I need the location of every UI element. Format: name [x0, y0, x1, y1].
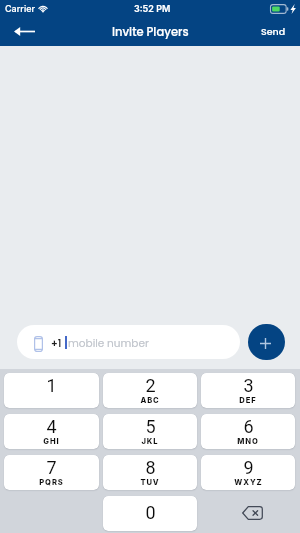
button[interactable]: 3 — [201, 373, 295, 408]
button[interactable]: +1 — [17, 325, 240, 359]
staticText: mobile number — [68, 336, 149, 351]
staticText: 4 — [46, 416, 57, 437]
staticText: 5 — [145, 416, 156, 437]
staticText: MNO — [237, 437, 259, 446]
staticText: 6 — [243, 416, 254, 437]
staticText: 1 — [46, 375, 57, 396]
staticText: 2 — [145, 375, 156, 396]
staticText: TUV — [140, 478, 160, 487]
button[interactable]: Send — [247, 17, 300, 46]
button[interactable]: Backspace — [201, 496, 295, 531]
staticText: Send — [261, 25, 286, 38]
staticText: +1 — [51, 336, 62, 350]
button[interactable]: 1 — [4, 373, 99, 408]
button[interactable]: 6 — [201, 414, 295, 449]
staticText: ABC — [140, 396, 160, 405]
button[interactable]: 4 — [4, 414, 99, 449]
button[interactable]: Back — [0, 17, 48, 46]
staticText: WXYZ — [234, 478, 263, 487]
staticText: GHI — [43, 437, 60, 446]
staticText: 8 — [145, 457, 156, 478]
staticText: Invite Players — [112, 24, 189, 40]
button[interactable]: 5 — [103, 414, 197, 449]
staticText: Carrier — [5, 3, 35, 14]
staticText: JKL — [141, 437, 159, 446]
staticText: DEF — [239, 396, 257, 405]
button[interactable]: 7 — [4, 455, 99, 490]
staticText: PQRS — [39, 478, 64, 487]
button[interactable]: Add — [248, 324, 285, 360]
button[interactable]: 2 — [103, 373, 197, 408]
button[interactable]: 8 — [103, 455, 197, 490]
button[interactable]: 0 — [103, 496, 197, 531]
staticText: 0 — [145, 502, 156, 523]
staticText: 9 — [243, 457, 254, 478]
staticText: 3:52 PM — [134, 3, 171, 14]
staticText: 3 — [243, 375, 254, 396]
button[interactable]: 9 — [201, 455, 295, 490]
staticText: 7 — [46, 457, 57, 478]
